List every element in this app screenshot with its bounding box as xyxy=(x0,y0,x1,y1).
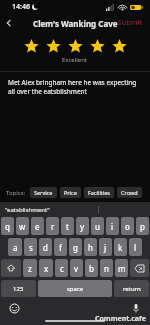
button[interactable]: Rate 2 stars xyxy=(45,38,61,54)
button[interactable]: z xyxy=(23,259,37,277)
button[interactable]: Rate 5 stars xyxy=(111,38,127,54)
button[interactable]: f xyxy=(54,238,67,256)
staticText: w xyxy=(19,221,26,232)
button[interactable]: l xyxy=(129,238,142,256)
button[interactable]: Back xyxy=(0,14,18,32)
staticText: r xyxy=(51,221,55,232)
button[interactable]: a xyxy=(8,238,22,256)
button[interactable]: n xyxy=(100,259,113,277)
button[interactable]: y xyxy=(76,217,89,235)
button[interactable]: u xyxy=(91,217,104,235)
button[interactable]: Backspace xyxy=(130,259,149,277)
button[interactable]: c xyxy=(55,259,68,277)
button[interactable]: Price xyxy=(60,187,81,198)
staticText: s xyxy=(29,242,33,253)
button[interactable]: return xyxy=(114,280,149,297)
staticText: k xyxy=(118,242,123,253)
button[interactable]: Service xyxy=(30,187,57,198)
staticText: p xyxy=(140,221,145,232)
button[interactable]: e xyxy=(31,217,44,235)
staticText: Topics: xyxy=(6,189,26,197)
staticText: Price xyxy=(64,189,77,196)
button[interactable]: Rate 3 stars xyxy=(67,38,83,54)
staticText: d xyxy=(43,242,48,253)
staticText: u xyxy=(95,221,100,232)
button[interactable]: s xyxy=(24,238,37,256)
staticText: m xyxy=(118,263,126,274)
staticText: Crowd xyxy=(121,189,138,196)
button[interactable]: x xyxy=(39,259,53,277)
staticText: 123 xyxy=(13,285,24,293)
staticText: t xyxy=(66,221,69,232)
staticText: i xyxy=(111,221,114,232)
button[interactable]: w xyxy=(16,217,29,235)
button[interactable]: space xyxy=(38,280,112,297)
button[interactable]: o xyxy=(121,217,134,235)
staticText: y xyxy=(80,221,85,232)
button[interactable]: m xyxy=(115,259,128,277)
staticText: l xyxy=(134,242,137,253)
staticText: a xyxy=(13,242,18,253)
button[interactable]: Rate 4 stars xyxy=(89,38,105,54)
staticText: Excellent xyxy=(62,56,88,64)
button[interactable]: p xyxy=(136,217,149,235)
button[interactable]: j xyxy=(99,238,112,256)
button[interactable]: Submit xyxy=(118,18,143,28)
staticText: j xyxy=(104,242,107,253)
staticText: n xyxy=(104,263,109,274)
staticText: 14:46 xyxy=(12,2,30,12)
button[interactable]: Voice input xyxy=(130,302,142,314)
button[interactable]: v xyxy=(70,259,83,277)
button[interactable]: Rate 1 stars xyxy=(23,38,39,54)
staticText: o xyxy=(125,221,130,232)
button[interactable]: Facilities xyxy=(84,187,114,198)
staticText: f xyxy=(59,242,62,253)
staticText: e xyxy=(35,221,40,232)
staticText: q xyxy=(5,221,10,232)
staticText: Met Alex bringham here he was expecting … xyxy=(8,78,142,96)
staticText: c xyxy=(60,263,64,274)
button[interactable]: "eatsblishment" xyxy=(5,206,50,214)
staticText: return xyxy=(123,285,141,293)
staticText: x xyxy=(44,263,49,274)
staticText: b xyxy=(89,263,94,274)
staticText: Service xyxy=(34,189,53,196)
button[interactable]: t xyxy=(61,217,74,235)
button[interactable]: r xyxy=(46,217,59,235)
staticText: h xyxy=(88,242,93,253)
button[interactable]: d xyxy=(39,238,52,256)
button[interactable]: k xyxy=(114,238,127,256)
button[interactable]: b xyxy=(85,259,98,277)
button[interactable]: q xyxy=(1,217,14,235)
staticText: Facilities xyxy=(88,189,110,196)
staticText: Clem's Wanking Cave xyxy=(33,18,118,29)
staticText: Submit xyxy=(118,18,143,28)
staticText: v xyxy=(74,263,79,274)
staticText: space xyxy=(67,285,84,293)
button[interactable]: i xyxy=(106,217,119,235)
staticText: Comment.cafe xyxy=(95,314,146,324)
button[interactable]: g xyxy=(69,238,82,256)
button[interactable]: Crowd xyxy=(117,187,142,198)
button[interactable]: Shift xyxy=(1,259,21,277)
button[interactable]: Emoji xyxy=(8,302,20,314)
staticText: g xyxy=(73,242,78,253)
button[interactable]: 123 xyxy=(1,280,36,297)
staticText: z xyxy=(28,263,32,274)
button[interactable]: h xyxy=(84,238,97,256)
